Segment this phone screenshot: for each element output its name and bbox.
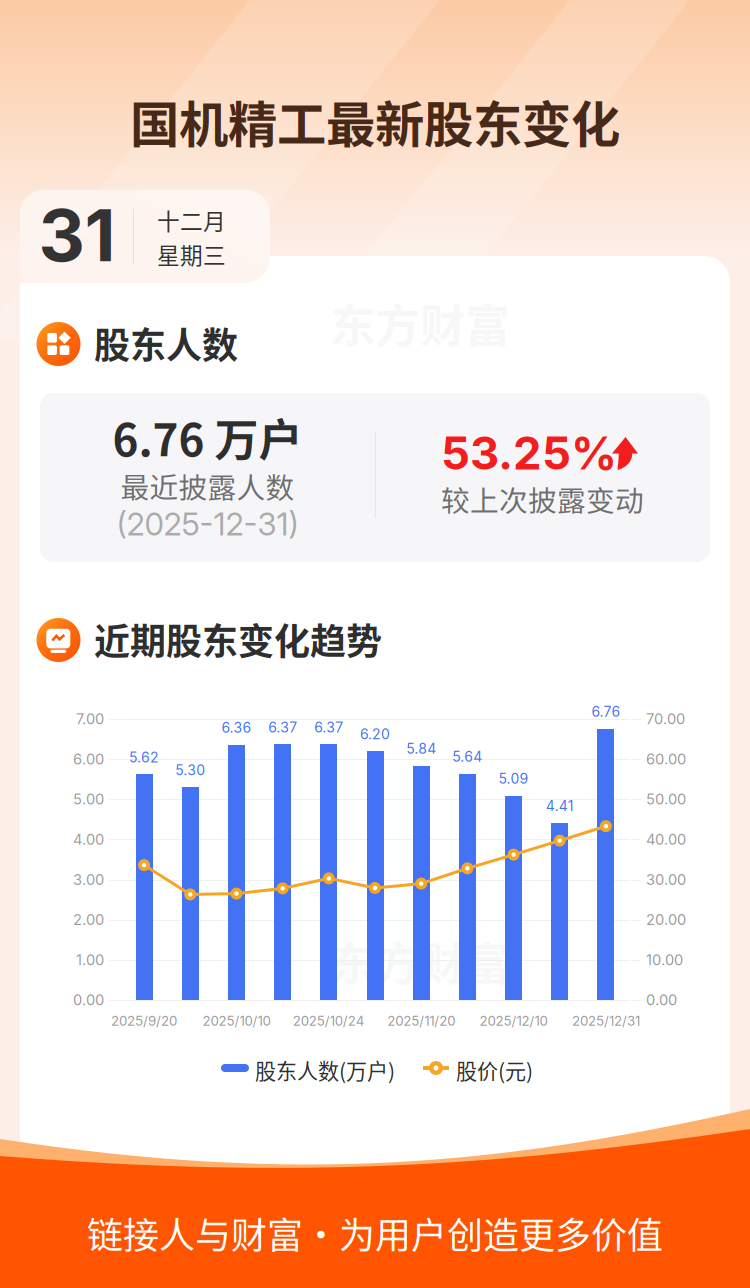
staticText: 十二月: [157, 204, 226, 236]
staticText: 1.00: [76, 951, 104, 969]
staticText: 4.00: [73, 831, 104, 848]
staticText: 2025/10/24: [293, 1013, 365, 1029]
staticText: 31: [38, 191, 115, 278]
staticText: 近期股东变化趋势: [94, 613, 382, 665]
staticText: 星期三: [157, 238, 226, 270]
staticText: 2025/11/20: [387, 1013, 455, 1029]
staticText: 7.00: [76, 710, 104, 728]
staticText: 50.00: [646, 790, 686, 808]
staticText: 53.25%: [441, 426, 617, 480]
staticText: 20.00: [646, 911, 686, 928]
staticText: 40.00: [646, 831, 686, 848]
staticText: 3.00: [73, 871, 104, 888]
staticText: 5.00: [73, 790, 104, 808]
staticText: 6.37: [268, 719, 297, 736]
staticText: 6.36: [221, 719, 251, 736]
staticText: 6.20: [360, 726, 390, 742]
staticText: 6.00: [73, 750, 104, 768]
staticText: 4.41: [546, 797, 574, 814]
staticText: 0.00: [646, 991, 677, 1009]
staticText: 国机精工最新股东变化: [130, 85, 620, 157]
staticText: 30.00: [646, 871, 686, 888]
staticText: 较上次披露变动: [441, 478, 644, 520]
staticText: 最近披露人数: [120, 465, 294, 507]
staticText: 东方财富: [330, 928, 510, 994]
staticText: 10.00: [646, 951, 683, 969]
staticText: 东方财富: [330, 290, 510, 356]
staticText: 70.00: [646, 710, 685, 728]
staticText: 2025/12/31: [572, 1013, 640, 1029]
staticText: 5.84: [406, 740, 436, 757]
staticText: 5.62: [129, 749, 159, 766]
staticText: 5.09: [498, 770, 528, 787]
staticText: 股价(元): [456, 1055, 533, 1085]
staticText: 6.37: [314, 719, 343, 736]
staticText: (2025-12-31): [116, 505, 298, 543]
staticText: 2025/10/10: [202, 1013, 270, 1029]
staticText: 2025/12/10: [479, 1013, 547, 1029]
staticText: 股东人数(万户): [255, 1055, 395, 1085]
staticText: 60.00: [646, 750, 686, 768]
staticText: 2025/9/20: [111, 1013, 177, 1029]
staticText: 6.76: [591, 703, 620, 720]
staticText: 6.76 万户: [112, 405, 302, 469]
staticText: 5.30: [175, 762, 205, 779]
staticText: 股东人数: [94, 317, 238, 369]
staticText: 2.00: [73, 911, 104, 928]
staticText: 链接人与财富·为用户创造更多价值: [87, 1207, 663, 1259]
staticText: 0.00: [73, 991, 104, 1009]
staticText: 5.64: [452, 748, 482, 765]
